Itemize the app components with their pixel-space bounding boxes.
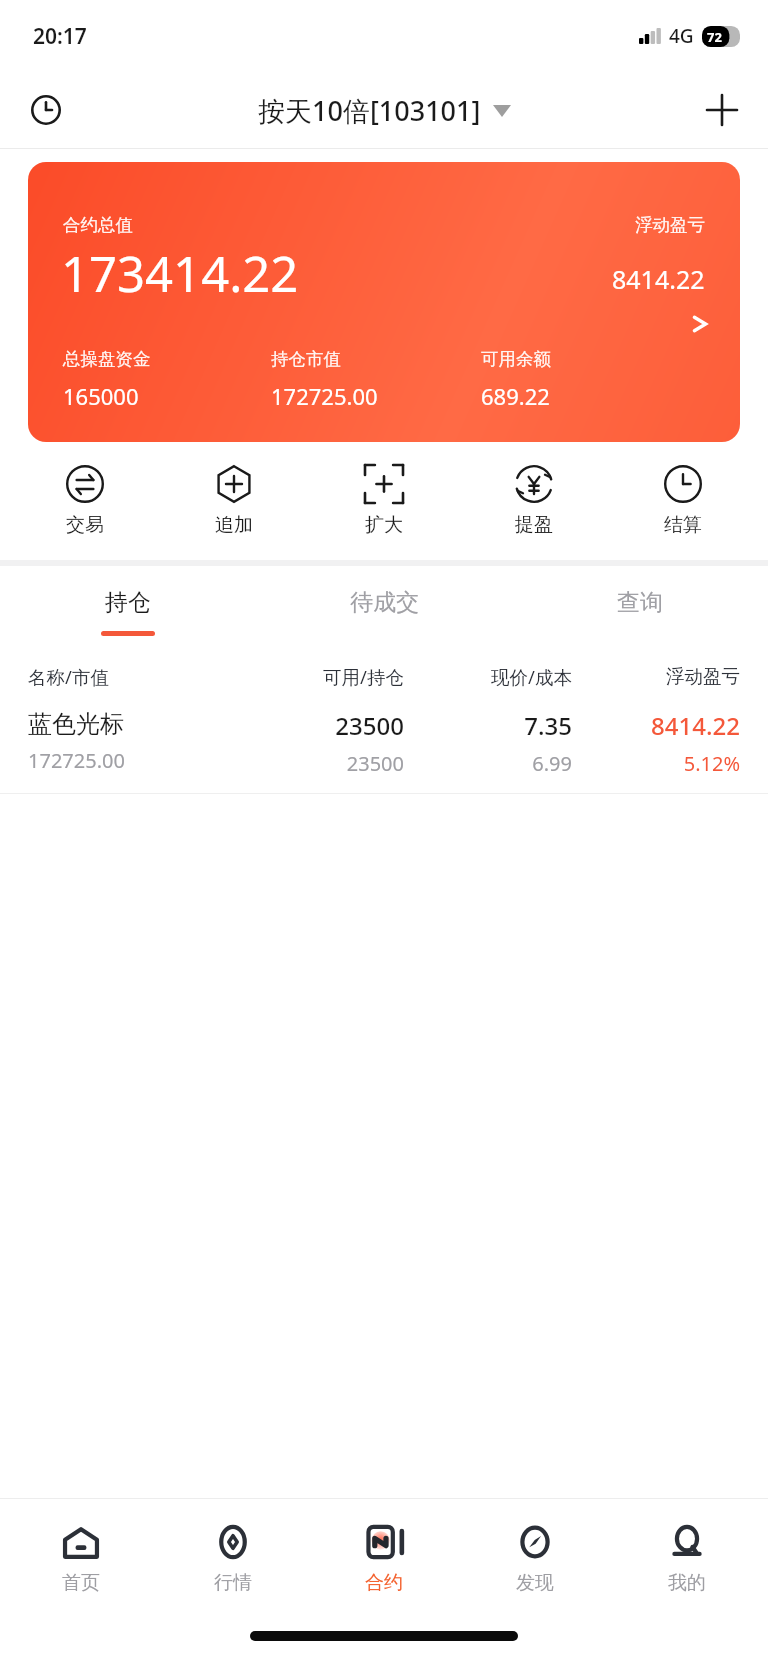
staticText: 可用余额 — [481, 348, 551, 370]
button[interactable]: 持仓 — [0, 566, 256, 656]
staticText: 发现 — [516, 1571, 554, 1595]
staticText: 8414.22 — [612, 262, 705, 296]
staticText: 172725.00 — [28, 747, 125, 774]
staticText: 持仓市值 — [271, 348, 341, 370]
staticText: 5.12% — [683, 750, 740, 777]
staticText: 蓝色光标 — [28, 709, 124, 739]
button[interactable]: 扩大 — [319, 459, 449, 543]
button[interactable]: 发现 — [465, 1499, 605, 1617]
staticText: 8414.22 — [651, 709, 740, 742]
staticText: 结算 — [664, 513, 702, 537]
staticText: 172725.00 — [271, 381, 378, 411]
staticText: 名称/市值 — [28, 664, 236, 689]
staticText: 可用/持仓 — [236, 664, 404, 689]
button[interactable]: Add — [694, 82, 750, 138]
staticText: 合约总值 — [63, 214, 133, 236]
button[interactable]: 蓝色光标 — [0, 695, 768, 793]
staticText: 首页 — [62, 1571, 100, 1595]
staticText: 我的 — [668, 1571, 706, 1595]
button[interactable]: 交易 — [20, 459, 150, 543]
staticText: 行情 — [214, 1571, 252, 1595]
staticText: 23500 — [335, 709, 404, 742]
staticText: 20:17 — [33, 22, 87, 51]
staticText: 689.22 — [481, 381, 550, 411]
button[interactable]: 行情 — [163, 1499, 303, 1617]
staticText: 合约 — [365, 1571, 403, 1595]
staticText: 待成交 — [350, 588, 419, 617]
staticText: 23500 — [346, 750, 404, 777]
button[interactable]: 我的 — [617, 1499, 757, 1617]
staticText: 交易 — [66, 513, 104, 537]
button[interactable]: 提盈 — [469, 459, 599, 543]
staticText: 173414.22 — [61, 240, 299, 307]
staticText: 按天10倍[103101] — [258, 92, 481, 129]
button[interactable]: History — [18, 82, 74, 138]
button[interactable]: 首页 — [11, 1499, 151, 1617]
button[interactable]: 查询 — [512, 566, 768, 656]
staticText: 4G — [669, 23, 694, 49]
button[interactable]: 结算 — [618, 459, 748, 543]
staticText: 总操盘资金 — [63, 348, 151, 370]
staticText: 追加 — [215, 513, 253, 537]
staticText: 提盈 — [515, 513, 553, 537]
staticText: 浮动盈亏 — [572, 665, 740, 688]
button[interactable]: 合约 — [314, 1499, 454, 1617]
button[interactable]: 追加 — [169, 459, 299, 543]
staticText: 持仓 — [105, 588, 151, 617]
staticText: 165000 — [63, 381, 139, 411]
staticText: 现价/成本 — [404, 664, 572, 689]
staticText: 7.35 — [524, 709, 572, 742]
staticText: 扩大 — [365, 513, 403, 537]
button[interactable]: 按天10倍[103101] — [258, 92, 511, 129]
staticText: 浮动盈亏 — [635, 214, 705, 236]
button[interactable]: 合约总值 — [28, 162, 740, 442]
staticText: 6.99 — [532, 750, 572, 777]
staticText: 查询 — [617, 588, 663, 617]
button[interactable]: 待成交 — [256, 566, 512, 656]
staticText: 72 — [707, 28, 722, 46]
